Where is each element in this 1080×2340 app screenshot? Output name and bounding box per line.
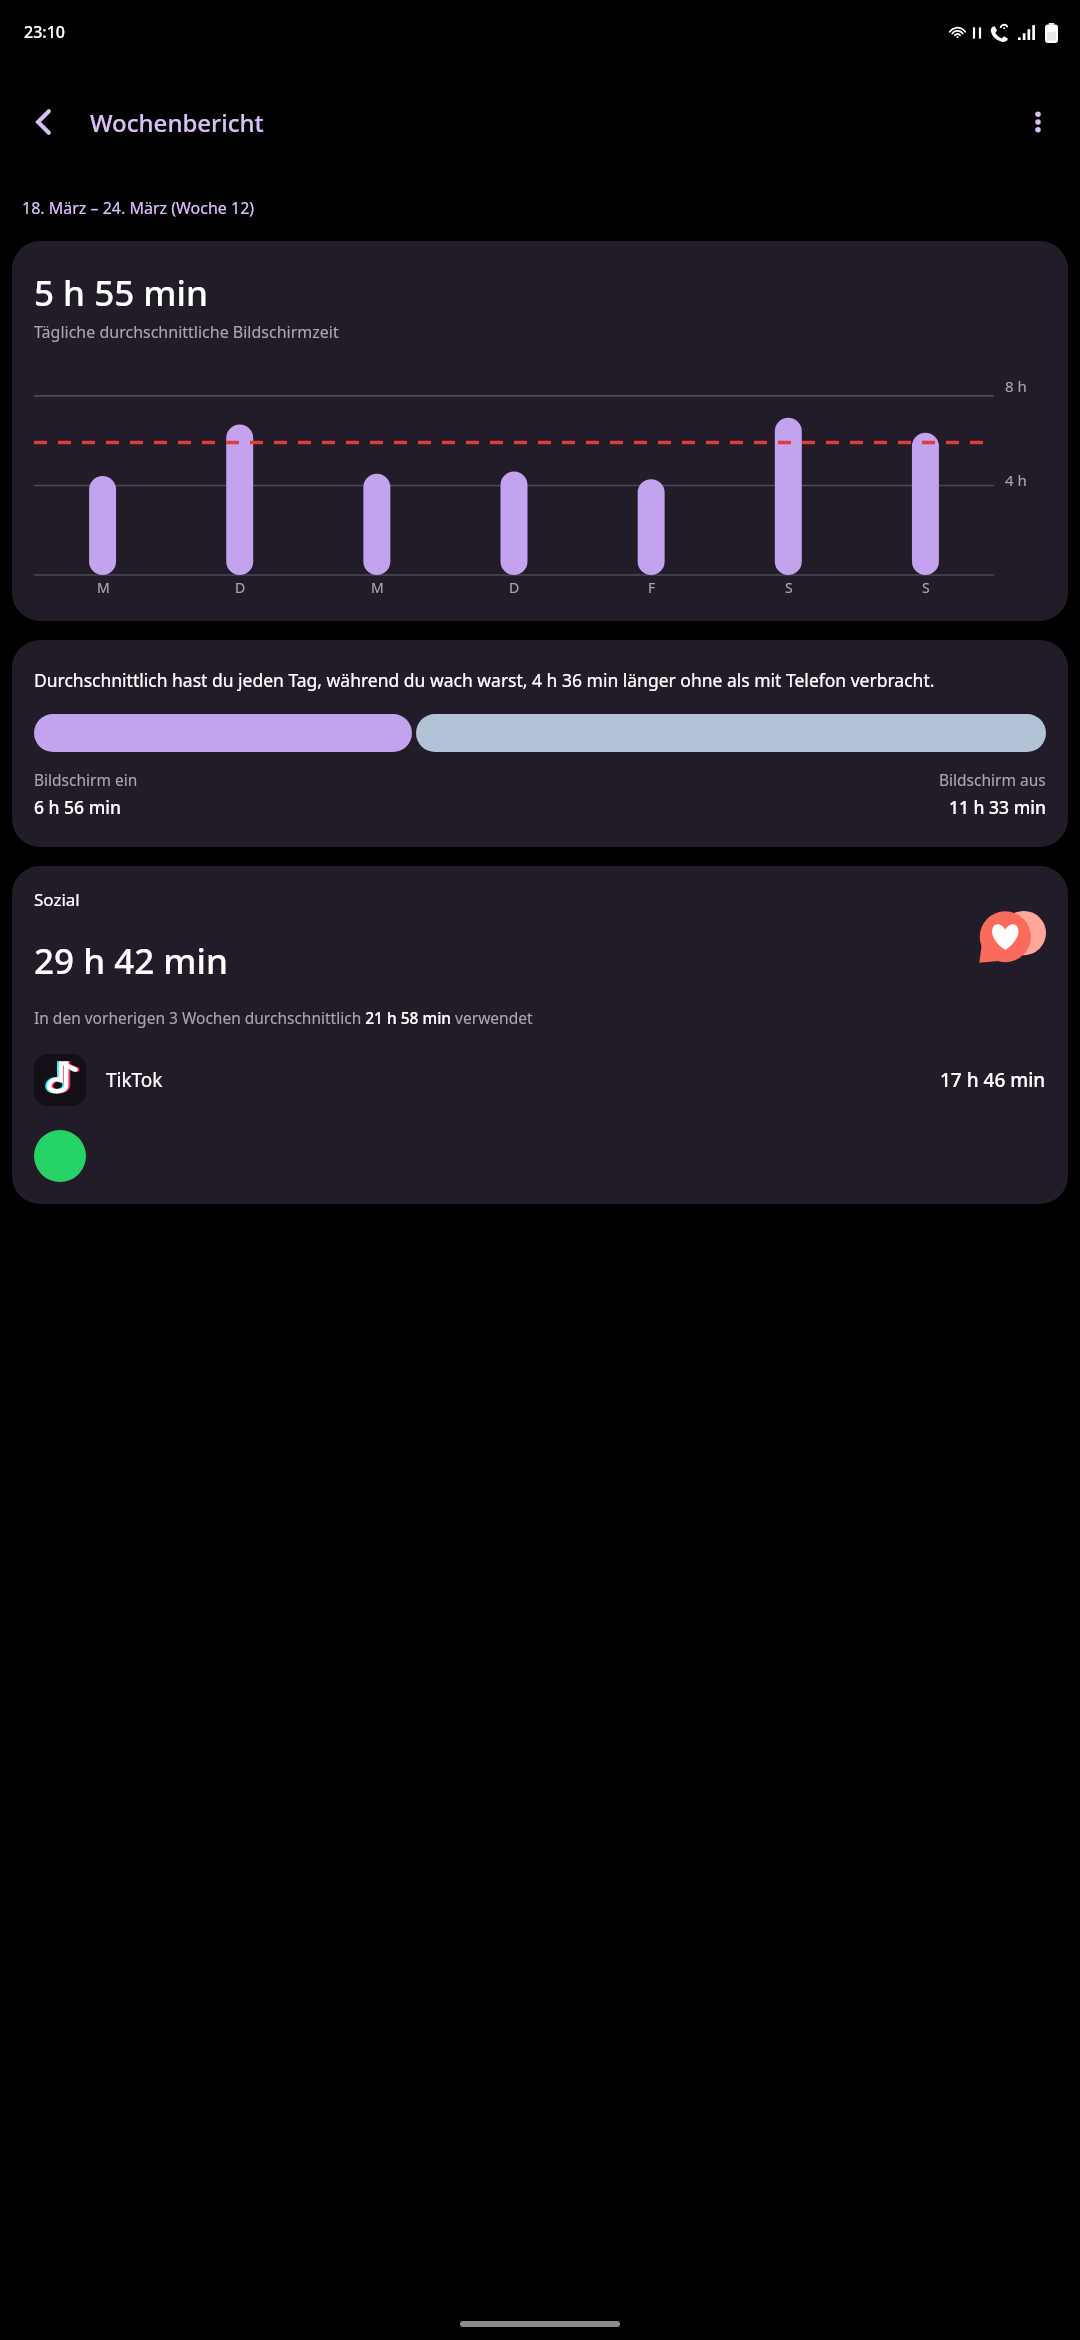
staticText: F (648, 578, 656, 597)
staticText: 17 h 46 min (940, 1067, 1046, 1093)
button[interactable]: Zurück (8, 86, 80, 158)
staticText: Bildschirm aus (939, 769, 1046, 790)
staticText: Bildschirm ein (34, 769, 138, 790)
button[interactable]: Sozial (12, 866, 1068, 1204)
button[interactable]: Mehr Optionen (1008, 92, 1068, 152)
button[interactable]: 5 h 55 min (12, 241, 1068, 621)
staticText: Wochenbericht (90, 106, 264, 139)
staticText: 11 h 33 min (949, 795, 1046, 819)
staticText: S (785, 578, 793, 597)
staticText: S (922, 578, 930, 597)
staticText: TikTok (106, 1067, 163, 1093)
staticText: 6 h 56 min (34, 795, 121, 819)
staticText: 29 h 42 min (34, 937, 228, 985)
staticText: D (235, 578, 246, 597)
staticText: 23:10 (24, 21, 65, 43)
staticText: M (371, 578, 384, 597)
staticText: 18. März – 24. März (Woche 12) (22, 197, 255, 219)
button[interactable]: TikTok (34, 1054, 1046, 1106)
staticText: Durchschnittlich hast du jeden Tag, währ… (34, 668, 935, 692)
staticText: Tägliche durchschnittliche Bildschirmzei… (34, 321, 339, 343)
staticText: In den vorherigen 3 Wochen durchschnittl… (34, 1007, 533, 1028)
staticText: 8 h (1005, 376, 1027, 396)
staticText: 4 h (1005, 470, 1027, 490)
staticText: Sozial (34, 888, 80, 911)
staticText: M (97, 578, 110, 597)
staticText: D (509, 578, 520, 597)
staticText: 5 h 55 min (34, 269, 208, 317)
button[interactable]: Durchschnittlich hast du jeden Tag, währ… (12, 640, 1068, 847)
